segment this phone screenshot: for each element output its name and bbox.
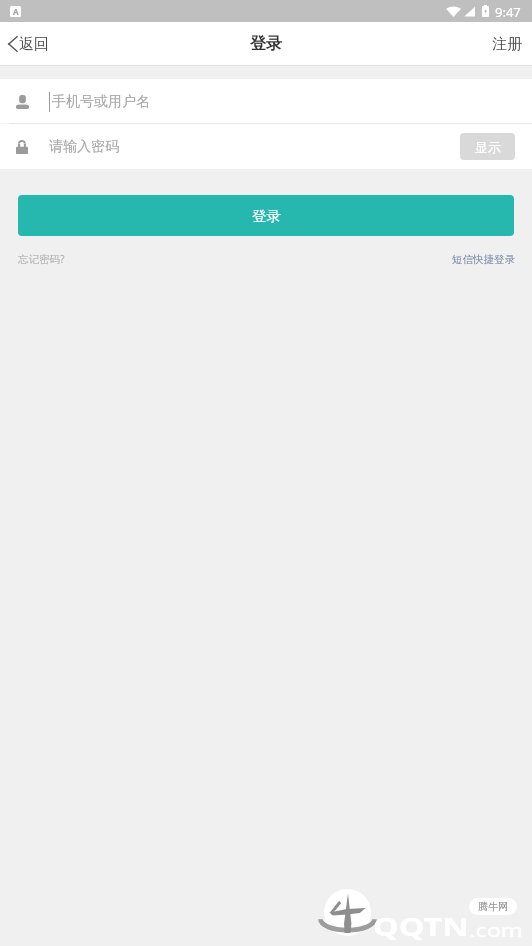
- staticText: 请输入密码: [49, 138, 119, 156]
- staticText: QQTN: [373, 909, 469, 943]
- button[interactable]: 手机号或用户名: [0, 79, 532, 124]
- button[interactable]: 请输入密码: [0, 124, 532, 169]
- staticText: 手机号或用户名: [52, 93, 150, 111]
- staticText: 登录: [252, 207, 281, 225]
- button[interactable]: 短信快捷登录: [452, 253, 515, 266]
- staticText: 9:47: [495, 3, 521, 21]
- button[interactable]: 注册: [482, 22, 532, 66]
- staticText: 登录: [250, 34, 282, 54]
- button[interactable]: 登录: [18, 195, 514, 236]
- staticText: .com: [469, 918, 524, 943]
- staticText: 返回: [19, 35, 49, 54]
- staticText: 显示: [475, 139, 501, 155]
- button[interactable]: 显示: [460, 133, 515, 160]
- staticText: 腾牛网: [478, 900, 508, 913]
- staticText: 注册: [492, 35, 522, 54]
- button[interactable]: 返回: [0, 22, 59, 66]
- button[interactable]: 忘记密码?: [18, 252, 65, 266]
- staticText: A: [13, 6, 19, 17]
